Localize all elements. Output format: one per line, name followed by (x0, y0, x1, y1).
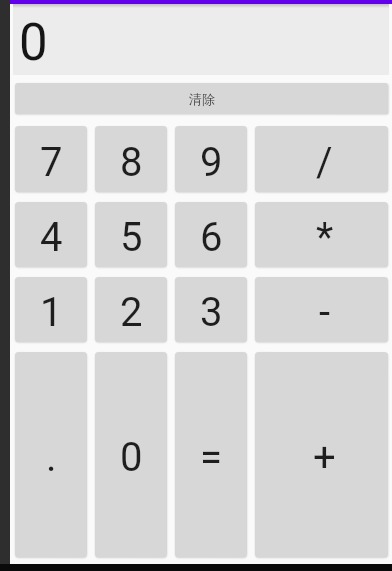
button[interactable]: 1 (15, 277, 87, 342)
staticText: 9 (200, 139, 223, 186)
staticText: . (46, 434, 57, 481)
button[interactable]: 8 (95, 126, 167, 192)
staticText: 0 (19, 13, 48, 73)
staticText: 2 (120, 289, 143, 336)
button[interactable]: - (255, 277, 388, 342)
button[interactable]: 7 (15, 126, 87, 192)
button[interactable]: 5 (95, 202, 167, 267)
staticText: * (316, 214, 334, 261)
staticText: / (316, 139, 333, 186)
staticText: 7 (40, 139, 63, 186)
button[interactable]: 清除 (15, 83, 388, 114)
staticText: 1 (40, 289, 63, 336)
staticText: + (313, 434, 336, 481)
button[interactable]: . (15, 352, 87, 557)
staticText: - (319, 289, 331, 336)
staticText: 6 (200, 214, 223, 261)
button[interactable]: 2 (95, 277, 167, 342)
button[interactable]: 4 (15, 202, 87, 267)
staticText: 3 (200, 289, 223, 336)
staticText: = (200, 434, 222, 481)
staticText: 清除 (189, 91, 215, 107)
staticText: 8 (120, 139, 143, 186)
button[interactable]: 3 (175, 277, 247, 342)
button[interactable]: / (255, 126, 388, 192)
staticText: 4 (40, 214, 63, 261)
staticText: 5 (120, 214, 143, 261)
button[interactable]: + (255, 352, 388, 557)
button[interactable]: * (255, 202, 388, 267)
staticText: 0 (120, 434, 143, 481)
button[interactable]: 6 (175, 202, 247, 267)
button[interactable]: = (175, 352, 247, 557)
button[interactable]: 9 (175, 126, 247, 192)
button[interactable]: 0 (95, 352, 167, 557)
